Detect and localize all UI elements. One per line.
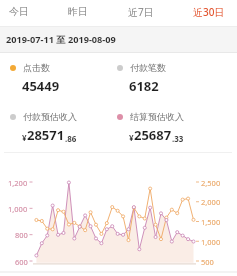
staticText: ¥: [129, 132, 134, 143]
staticText: 1,200: [8, 178, 28, 188]
staticText: 45449: [22, 77, 60, 95]
staticText: ¥: [22, 132, 27, 143]
staticText: 500: [201, 257, 214, 267]
button[interactable]: 结算预估收入: [117, 111, 227, 144]
staticText: 1,500: [201, 217, 221, 227]
button[interactable]: 昨日: [68, 0, 88, 23]
staticText: 25687: [134, 126, 172, 144]
button[interactable]: 今日: [9, 0, 29, 23]
button[interactable]: 付款预估收入: [10, 111, 120, 144]
staticText: 2,500: [201, 178, 221, 188]
staticText: 付款笔数: [130, 62, 166, 73]
staticText: 近7日: [128, 5, 154, 19]
staticText: 付款预估收入: [23, 111, 77, 122]
staticText: 6182: [129, 77, 159, 95]
staticText: .33: [172, 133, 184, 144]
staticText: 2019-07-11 至 2019-08-09: [6, 33, 116, 46]
staticText: 1,000: [201, 237, 221, 247]
button[interactable]: 点击数: [10, 62, 120, 95]
button[interactable]: 2019-07-11 至 2019-08-09: [0, 27, 237, 52]
button[interactable]: 近30日: [193, 0, 225, 23]
staticText: 近30日: [193, 5, 225, 19]
staticText: 2,000: [201, 197, 221, 207]
staticText: .86: [65, 133, 77, 144]
staticText: 1,000: [8, 204, 28, 214]
staticText: 600: [15, 257, 28, 267]
staticText: 结算预估收入: [130, 111, 184, 122]
staticText: 点击数: [23, 62, 50, 73]
staticText: 今日: [9, 5, 29, 18]
staticText: 28571: [27, 126, 65, 144]
staticText: 昨日: [68, 5, 88, 18]
staticText: 800: [15, 230, 28, 240]
button[interactable]: 近7日: [128, 0, 154, 23]
button[interactable]: 付款笔数: [117, 62, 227, 95]
